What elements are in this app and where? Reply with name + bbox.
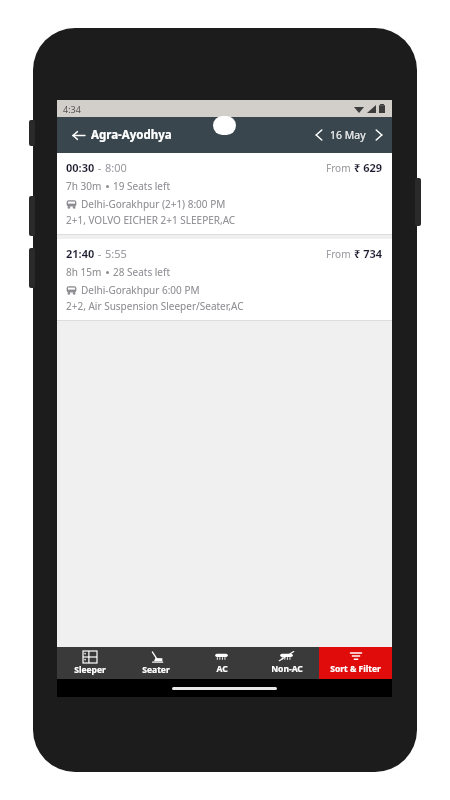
button[interactable]: Sort & Filter [319, 647, 392, 679]
staticText: Delhi-Gorakhpur 6:00 PM [81, 283, 200, 297]
staticText: 2+1, VOLVO EICHER 2+1 SLEEPER,AC [66, 213, 236, 227]
staticText: AC [216, 663, 228, 675]
button[interactable]: 00:30 [57, 153, 392, 234]
staticText: Seater [142, 664, 170, 676]
staticText: 8:00 [105, 160, 127, 175]
staticText: ₹ 629 [354, 160, 383, 175]
button[interactable]: AC [189, 647, 254, 679]
staticText: Non-AC [271, 663, 303, 675]
staticText: 28 Seats left [113, 265, 171, 279]
staticText: - [95, 160, 105, 175]
staticText: Sleeper [74, 664, 106, 676]
staticText: 19 Seats left [113, 179, 171, 193]
button[interactable]: Agra-Ayodhya [91, 117, 172, 153]
button[interactable]: Non-AC [254, 647, 319, 679]
button[interactable]: Previous day [308, 117, 330, 153]
button[interactable]: Back [65, 117, 91, 153]
button[interactable]: Sleeper [57, 647, 123, 679]
staticText: 2+2, Air Suspension Sleeper/Seater,AC [66, 299, 244, 313]
staticText: Sort & Filter [330, 663, 381, 675]
staticText: - [95, 246, 105, 261]
staticText: 8h 15m [66, 265, 102, 279]
staticText: 21:40 [66, 246, 95, 261]
staticText: Agra-Ayodhya [91, 127, 172, 143]
staticText: 5:55 [105, 246, 127, 261]
staticText: From [326, 247, 354, 261]
staticText: 00:30 [66, 160, 95, 175]
button[interactable]: Next day [366, 117, 392, 153]
button[interactable]: 21:40 [57, 239, 392, 320]
staticText: From [326, 161, 354, 175]
staticText: Delhi-Gorakhpur (2+1) 8:00 PM [81, 197, 226, 211]
button[interactable]: Seater [123, 647, 189, 679]
staticText: ₹ 734 [354, 246, 383, 261]
staticText: 4:34 [63, 103, 81, 115]
staticText: 7h 30m [66, 179, 102, 193]
staticText: 16 May [330, 128, 366, 142]
button[interactable]: 16 May [330, 117, 366, 153]
